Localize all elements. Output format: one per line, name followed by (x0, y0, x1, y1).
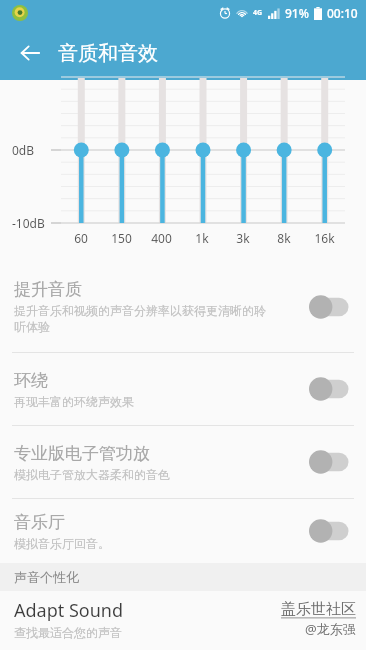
staticText: 3k (236, 230, 250, 246)
staticText: Adapt Sound (14, 598, 124, 623)
button[interactable]: 提升音质 (0, 262, 366, 352)
staticText: 音质和音效 (58, 41, 158, 66)
button[interactable]: 专业版电子管功放 (0, 426, 366, 498)
staticText: 8k (277, 230, 291, 246)
button[interactable]: Toggle (308, 376, 352, 402)
staticText: -10dB (12, 215, 45, 231)
staticText: 0dB (12, 142, 35, 158)
staticText: 盖乐世社区 (281, 600, 356, 619)
button[interactable]: Toggle (308, 294, 352, 320)
button[interactable]: Toggle (308, 449, 352, 475)
staticText: 150 (111, 230, 132, 246)
button[interactable]: 环绕 (0, 353, 366, 425)
staticText: 查找最适合您的声音 (14, 625, 122, 640)
button[interactable]: Toggle (308, 518, 352, 544)
staticText: 模拟电子管放大器柔和的音色 (14, 467, 170, 482)
staticText: 环绕 (14, 370, 48, 391)
button[interactable]: Back (8, 31, 52, 75)
staticText: 提升音质 (14, 279, 82, 300)
staticText: 模拟音乐厅回音。 (14, 536, 110, 551)
staticText: 音乐厅 (14, 512, 65, 533)
staticText: @龙东强 (305, 620, 356, 638)
staticText: 91% (285, 5, 309, 21)
staticText: 16k (314, 230, 335, 246)
staticText: 60 (74, 230, 88, 246)
staticText: 1k (195, 230, 209, 246)
button[interactable]: Adapt Sound (0, 591, 366, 647)
staticText: 再现丰富的环绕声效果 (14, 394, 134, 409)
staticText: 00:10 (327, 5, 358, 21)
staticText: 提升音乐和视频的声音分辨率以获得更清晰的聆 听体验 (14, 303, 267, 335)
staticText: 专业版电子管功放 (14, 443, 150, 464)
staticText: 400 (151, 230, 172, 246)
button[interactable]: 音乐厅 (0, 499, 366, 563)
staticText: 4G (253, 8, 263, 18)
staticText: 声音个性化 (14, 569, 79, 585)
